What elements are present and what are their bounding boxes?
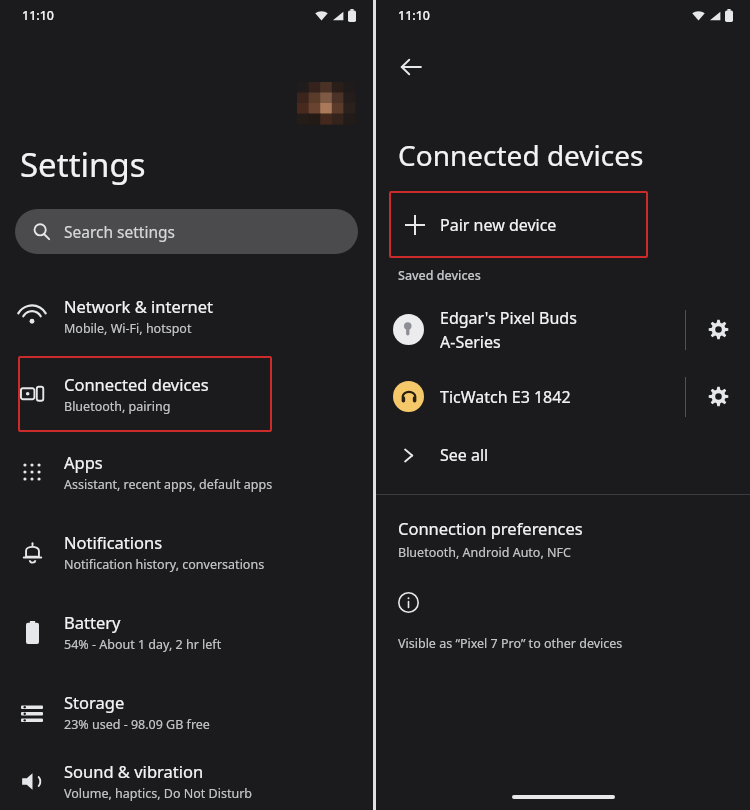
staticText: Network & internet — [64, 295, 214, 317]
button[interactable]: Notifications — [0, 512, 373, 592]
staticText: Assistant, recent apps, default apps — [64, 476, 273, 493]
staticText: Sound & vibration — [64, 760, 204, 782]
button[interactable]: Edgar's Pixel Buds — [376, 296, 685, 363]
staticText: See all — [440, 444, 489, 466]
button[interactable]: Device settings — [686, 296, 750, 363]
staticText: Apps — [64, 451, 103, 473]
staticText: Connection preferences — [398, 517, 583, 539]
staticText: A-Series — [440, 331, 501, 353]
staticText: 11:10 — [22, 7, 55, 24]
button[interactable]: Battery — [0, 592, 373, 672]
staticText: Edgar's Pixel Buds — [440, 307, 577, 329]
staticText: Saved devices — [398, 267, 481, 284]
button[interactable]: Network & internet — [0, 276, 373, 356]
staticText: Volume, haptics, Do Not Disturb — [64, 785, 253, 802]
button[interactable]: Search settings — [15, 209, 358, 254]
staticText: Bluetooth, Android Auto, NFC — [398, 544, 571, 561]
button[interactable]: See all — [376, 430, 750, 480]
staticText: 23% used - 98.09 GB free — [64, 716, 210, 733]
staticText: Battery — [64, 611, 121, 633]
button[interactable]: TicWatch E3 1842 — [376, 363, 685, 430]
button[interactable] — [18, 356, 272, 432]
staticText: 11:10 — [398, 7, 431, 24]
button[interactable]: Account — [297, 82, 355, 124]
button[interactable]: Device settings — [686, 363, 750, 430]
button[interactable]: Connection preferences — [398, 517, 583, 561]
staticText: Visible as “Pixel 7 Pro” to other device… — [398, 635, 623, 652]
button[interactable]: Storage — [0, 672, 373, 752]
staticText: Mobile, Wi-Fi, hotspot — [64, 320, 192, 337]
button[interactable]: Sound & vibration — [0, 752, 373, 810]
button[interactable]: Apps — [0, 432, 373, 512]
staticText: 54% - About 1 day, 2 hr left — [64, 636, 222, 653]
button[interactable]: Pair new device — [389, 191, 648, 258]
staticText: Connected devices — [64, 373, 209, 395]
button[interactable]: Back — [388, 44, 434, 90]
staticText: Notification history, conversations — [64, 556, 265, 573]
staticText: Connected devices — [398, 136, 644, 174]
staticText: TicWatch E3 1842 — [440, 386, 571, 408]
staticText: Pair new device — [440, 214, 557, 236]
staticText: Bluetooth, pairing — [64, 398, 171, 415]
staticText: Settings — [20, 142, 146, 187]
staticText: Storage — [64, 691, 125, 713]
staticText: Search settings — [64, 221, 175, 242]
staticText: Notifications — [64, 531, 163, 553]
